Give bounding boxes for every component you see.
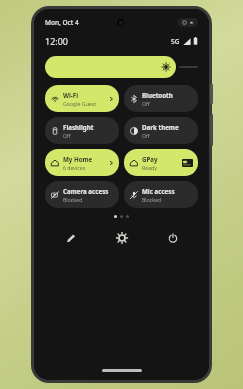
staticText: Mon, Oct 4 [45, 18, 79, 27]
staticText: Mic access [142, 187, 175, 195]
button[interactable] [45, 56, 176, 78]
staticText: Google Guest [63, 100, 97, 107]
button[interactable]: GPay [124, 149, 198, 176]
staticText: 5G [171, 37, 180, 46]
staticText: Off [142, 132, 150, 139]
button[interactable]: Camera access [45, 181, 119, 208]
button[interactable]: My Home [45, 149, 119, 176]
staticText: Blocked [142, 196, 162, 203]
staticText: Off [63, 132, 71, 139]
button[interactable]: Mic access [124, 181, 198, 208]
staticText: My Home [63, 155, 93, 163]
staticText: Blocked [63, 196, 83, 203]
button[interactable]: Settings [112, 228, 132, 248]
button[interactable]: Flashlight [45, 117, 119, 144]
staticText: GPay [142, 155, 158, 163]
button[interactable]: Dark theme [124, 117, 198, 144]
staticText: Flashlight [63, 123, 94, 131]
staticText: Off [142, 100, 150, 107]
staticText: Dark theme [142, 123, 179, 131]
button[interactable]: Bluetooth [124, 85, 198, 112]
staticText: Wi-Fi [63, 91, 79, 99]
staticText: Ready [142, 164, 157, 171]
button[interactable]: Edit [61, 228, 81, 248]
button[interactable]: Wi-Fi [45, 85, 119, 112]
staticText: 12:00 [45, 35, 69, 47]
staticText: 6 devices [63, 164, 86, 171]
staticText: Bluetooth [142, 91, 173, 99]
staticText: Camera access [63, 187, 109, 195]
button[interactable]: Power [163, 228, 183, 248]
